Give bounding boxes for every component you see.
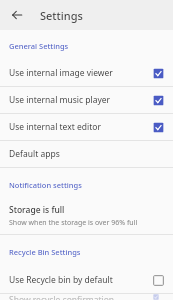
staticText: Use internal music player [9, 94, 111, 106]
button[interactable]: Show recycle confirmation [0, 294, 173, 300]
staticText: Notification settings [9, 180, 82, 190]
button[interactable]: Use internal music player [0, 87, 173, 113]
staticText: Recycle Bin Settings [9, 247, 81, 257]
staticText: General Settings [9, 41, 69, 51]
button[interactable]: Use internal text editor [0, 114, 173, 140]
staticText: Default apps [9, 148, 60, 160]
button[interactable]: Storage is full [0, 200, 173, 234]
staticText: Use internal text editor [9, 121, 101, 133]
staticText: Settings [40, 8, 83, 23]
staticText: Show recycle confirmation [9, 294, 115, 300]
button[interactable]: Default apps [0, 141, 173, 167]
staticText: Show when the storage is over 96% full [9, 218, 138, 228]
button[interactable]: Use internal image viewer [0, 60, 173, 86]
staticText: Use Recycle bin by default [9, 274, 113, 286]
staticText: Storage is full [9, 204, 65, 216]
button[interactable]: Use Recycle bin by default [0, 267, 173, 293]
button[interactable]: Back [6, 4, 28, 26]
staticText: Use internal image viewer [9, 67, 113, 79]
